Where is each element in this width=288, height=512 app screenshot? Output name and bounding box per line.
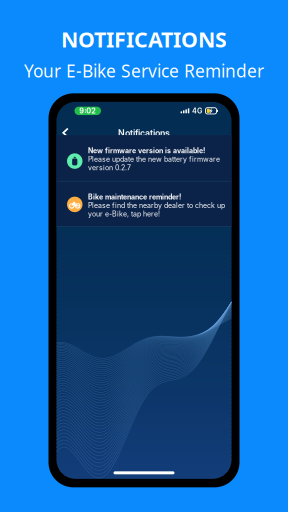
button[interactable]: Bike maintenance reminder! [56, 182, 231, 226]
staticText: NOTIFICATIONS [61, 25, 227, 53]
staticText: 4G [192, 106, 202, 115]
button[interactable]: Back [57, 119, 74, 135]
staticText: Your E-Bike Service Reminder [24, 59, 264, 82]
staticText: Please update the new battery firmware v… [88, 155, 220, 172]
staticText: New firmware version is available! [88, 146, 205, 155]
staticText: Bike maintenance reminder! [88, 193, 181, 201]
staticText: Please find the nearby dealer to check u… [88, 201, 225, 218]
staticText: Notifications [118, 128, 170, 138]
button[interactable]: New firmware version is available! [56, 135, 231, 181]
staticText: 9:02 [79, 106, 96, 115]
